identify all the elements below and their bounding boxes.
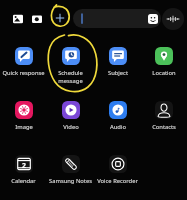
staticText: Samsung Notes: [49, 177, 92, 185]
staticText: Video: [63, 123, 79, 131]
staticText: Voice Recorder: [97, 177, 138, 185]
button[interactable]: Voice Recorder: [94, 149, 141, 195]
button[interactable]: Gallery: [13, 14, 23, 24]
button[interactable]: Location: [140, 41, 187, 87]
button[interactable]: Contacts: [140, 95, 187, 141]
staticText: Schedule message: [58, 69, 83, 85]
button[interactable]: Add attachment: [54, 12, 66, 24]
button[interactable]: 2: [0, 149, 47, 195]
button[interactable]: Schedule message: [47, 41, 94, 87]
staticText: Location: [152, 69, 176, 77]
button[interactable]: Audio: [94, 95, 141, 141]
button[interactable]: Camera: [32, 14, 42, 24]
staticText: Contacts: [152, 123, 176, 131]
button[interactable]: Stickers: [148, 14, 158, 24]
button[interactable]: Voice message: [162, 8, 184, 30]
staticText: Subject: [108, 69, 128, 77]
button[interactable]: Samsung Notes: [47, 149, 94, 195]
staticText: Quick response: [2, 69, 45, 77]
button[interactable]: Quick response: [0, 41, 47, 87]
staticText: Audio: [110, 123, 126, 131]
staticText: Calendar: [11, 177, 36, 185]
button[interactable]: [73, 9, 161, 28]
staticText: Image: [15, 123, 33, 131]
staticText: 2: [22, 161, 26, 170]
button[interactable]: Image: [0, 95, 47, 141]
button[interactable]: Video: [47, 95, 94, 141]
button[interactable]: Subject: [94, 41, 141, 87]
